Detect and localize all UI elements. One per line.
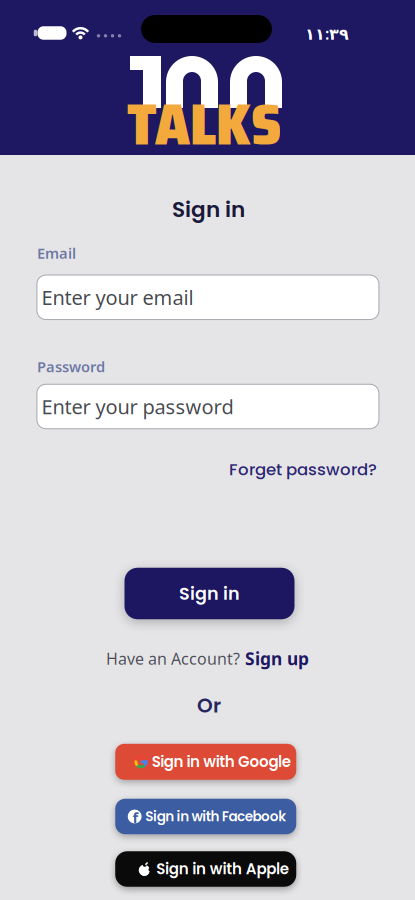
staticText: Sign in bbox=[172, 194, 245, 225]
staticText: TALKS bbox=[127, 79, 282, 170]
staticText: Enter your password bbox=[41, 393, 233, 420]
staticText: f bbox=[132, 808, 138, 827]
staticText: Or bbox=[197, 691, 221, 719]
button[interactable]: Forget password? bbox=[229, 458, 377, 481]
button[interactable]: Enter your email bbox=[37, 275, 379, 320]
staticText: Enter your email bbox=[41, 284, 193, 311]
staticText: Sign up bbox=[245, 647, 309, 670]
staticText: Sign in with Google bbox=[152, 751, 291, 772]
button[interactable]: Enter your password bbox=[37, 384, 379, 429]
button[interactable]: Sign in with Apple bbox=[115, 851, 296, 887]
staticText: Have an Account? bbox=[106, 648, 240, 669]
staticText: Sign in with Facebook bbox=[145, 807, 286, 826]
button[interactable]: Sign in bbox=[124, 568, 294, 619]
staticText: ١١:٣٩ bbox=[305, 23, 349, 44]
staticText: Email bbox=[37, 243, 76, 263]
staticText: Sign in with Apple bbox=[156, 858, 289, 880]
button[interactable]: Sign up bbox=[245, 647, 309, 670]
button[interactable]: f bbox=[115, 799, 296, 834]
staticText: Password bbox=[37, 357, 105, 376]
staticText: Sign in bbox=[179, 581, 240, 606]
button[interactable]: Sign in with Google bbox=[115, 744, 296, 780]
staticText: Forget password? bbox=[229, 458, 377, 481]
